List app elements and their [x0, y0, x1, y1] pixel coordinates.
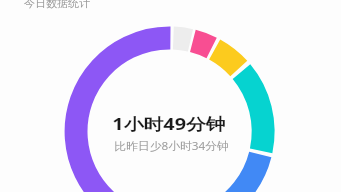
staticText: 比昨日少8小时34分钟 [114, 138, 229, 153]
staticText: 1小时49分钟 [112, 113, 226, 135]
staticText: 今日数据统计 [24, 0, 90, 10]
